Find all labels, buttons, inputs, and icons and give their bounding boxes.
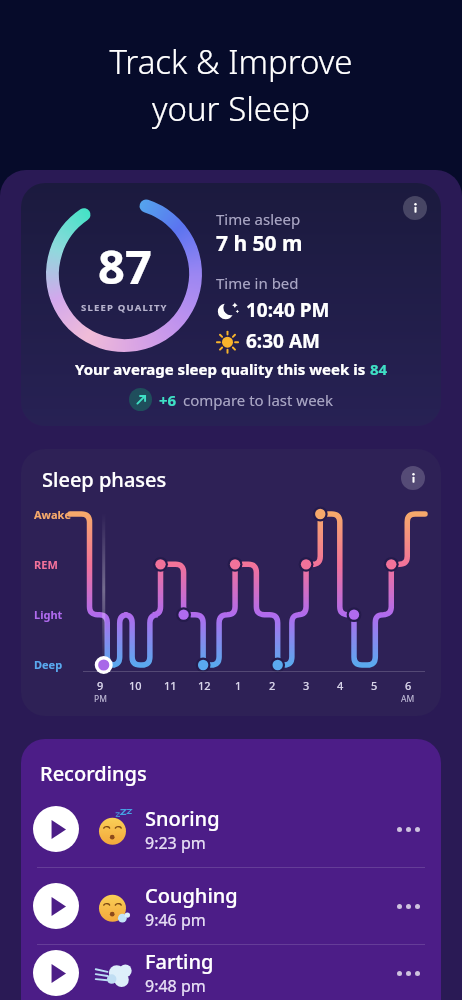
staticText: Recordings [40, 760, 147, 787]
staticText: Snoring [145, 805, 220, 832]
button[interactable]: More options for Farting [387, 952, 429, 994]
staticText: 2 [269, 678, 276, 693]
staticText: 9:48 pm [145, 975, 206, 997]
staticText: Deep [34, 657, 63, 672]
staticText: 9:23 pm [145, 832, 206, 854]
button[interactable]: Play Coughing recording [21, 868, 441, 944]
staticText: Awake [34, 507, 72, 522]
staticText: AM [401, 693, 415, 705]
button[interactable]: Information [401, 466, 425, 490]
button[interactable]: More options for Snoring [387, 808, 429, 850]
staticText: compare to last week [183, 390, 334, 410]
staticText: SLEEP QUALITY [81, 301, 168, 314]
button[interactable]: Information [403, 196, 427, 220]
staticText: 7 h 50 m [216, 229, 303, 258]
button[interactable]: Play Farting recording [21, 945, 441, 1000]
staticText: Time asleep [216, 209, 301, 229]
staticText: Track & Improve your Sleep [109, 39, 353, 131]
staticText: 12 [198, 678, 211, 693]
button[interactable]: Play Snoring recording [33, 806, 79, 852]
staticText: 9 [97, 678, 104, 693]
button[interactable]: +6 [129, 388, 334, 411]
staticText: REM [34, 557, 58, 572]
staticText: 1 [235, 678, 242, 693]
button[interactable]: Play Coughing recording [33, 883, 79, 929]
staticText: 3 [303, 678, 310, 693]
staticText: 10 [129, 678, 142, 693]
staticText: Time in bed [216, 273, 299, 293]
button[interactable]: More options for Coughing [387, 885, 429, 927]
staticText: Farting [145, 948, 214, 975]
button[interactable]: Play Snoring recording [21, 791, 441, 867]
staticText: Sleep phases [42, 466, 167, 493]
button[interactable]: Play Farting recording [33, 950, 79, 996]
staticText: 87 [98, 234, 152, 298]
staticText: 9:46 pm [145, 909, 206, 931]
staticText: 6:30 AM [246, 328, 320, 354]
staticText: 6 [405, 678, 412, 693]
staticText: Light [34, 607, 63, 622]
staticText: Your average sleep quality this week is [75, 359, 370, 379]
staticText: 4 [337, 678, 344, 693]
staticText: 11 [164, 678, 177, 693]
staticText: 10:40 PM [246, 297, 330, 323]
staticText: 5 [371, 678, 378, 693]
staticText: +6 [159, 390, 177, 410]
staticText: Coughing [145, 882, 238, 909]
staticText: 84 [370, 359, 388, 379]
staticText: PM [94, 693, 107, 705]
